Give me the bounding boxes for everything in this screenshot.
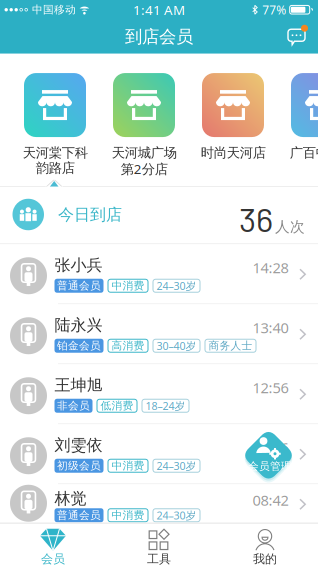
staticText: 陆永兴 [54, 315, 102, 335]
staticText: 12:56 [252, 378, 288, 397]
button[interactable]: 广百中怡店 [291, 73, 318, 161]
button[interactable]: 工具 [106, 523, 212, 566]
staticText: 到店会员 [125, 26, 193, 47]
button[interactable]: 陆永兴 [0, 304, 318, 364]
staticText: 30–40岁 [156, 339, 196, 353]
staticText: 普通会员 [57, 279, 101, 292]
button[interactable]: 天河棠下科 韵路店 [24, 73, 86, 176]
staticText: 人次 [275, 218, 305, 236]
staticText: 36 [239, 199, 273, 239]
staticText: 今日到店 [58, 205, 122, 224]
staticText: 高消费 [111, 339, 144, 352]
staticText: 会员管理 [248, 460, 292, 473]
staticText: 刘雯依 [54, 435, 102, 455]
staticText: 铂金会员 [57, 339, 101, 352]
staticText: 08:42 [252, 490, 288, 510]
button[interactable]: 时尚天河店 [202, 73, 264, 161]
staticText: 非会员 [57, 399, 90, 412]
staticText: 77% [262, 2, 286, 18]
staticText: 24–30岁 [156, 279, 196, 293]
staticText: 24–30岁 [156, 508, 196, 522]
staticText: 12:36 [252, 438, 288, 457]
button[interactable]: 会员 [0, 523, 106, 566]
staticText: 王坤旭 [54, 375, 102, 395]
staticText: 13:40 [252, 318, 288, 337]
staticText: 普通会员 [57, 509, 101, 522]
staticText: 18–24岁 [145, 399, 185, 413]
staticText: 中国移动 [32, 3, 76, 16]
button[interactable]: 天河城广场 第2分店 [113, 73, 175, 178]
staticText: 天河城广场 第2分店 [111, 145, 176, 178]
button[interactable]: 林觉 [0, 484, 318, 523]
button[interactable]: 我的 [212, 523, 318, 566]
staticText: 中消费 [111, 459, 144, 472]
button[interactable]: 会员管理 [240, 428, 296, 484]
button[interactable]: 消息 [287, 28, 318, 45]
staticText: 24–30岁 [156, 459, 196, 473]
button[interactable]: 王坤旭 [0, 364, 318, 424]
staticText: 1:41 AM [133, 1, 185, 19]
staticText: 14:28 [252, 258, 288, 277]
staticText: 中消费 [111, 279, 144, 292]
staticText: 中消费 [111, 509, 144, 522]
button[interactable]: 刘雯依 [0, 424, 318, 484]
button[interactable]: 张小兵 [0, 244, 318, 304]
staticText: 时尚天河店 [200, 145, 265, 161]
staticText: 初级会员 [57, 459, 101, 472]
staticText: 会员 [41, 552, 65, 566]
staticText: 广百中怡店 [289, 145, 318, 161]
staticText: 工具 [147, 552, 171, 566]
staticText: 我的 [253, 552, 277, 566]
staticText: 商务人士 [208, 339, 252, 352]
staticText: 林觉 [54, 489, 86, 508]
staticText: 张小兵 [54, 255, 102, 275]
staticText: 天河棠下科 韵路店 [22, 145, 87, 176]
staticText: 低消费 [100, 399, 133, 412]
